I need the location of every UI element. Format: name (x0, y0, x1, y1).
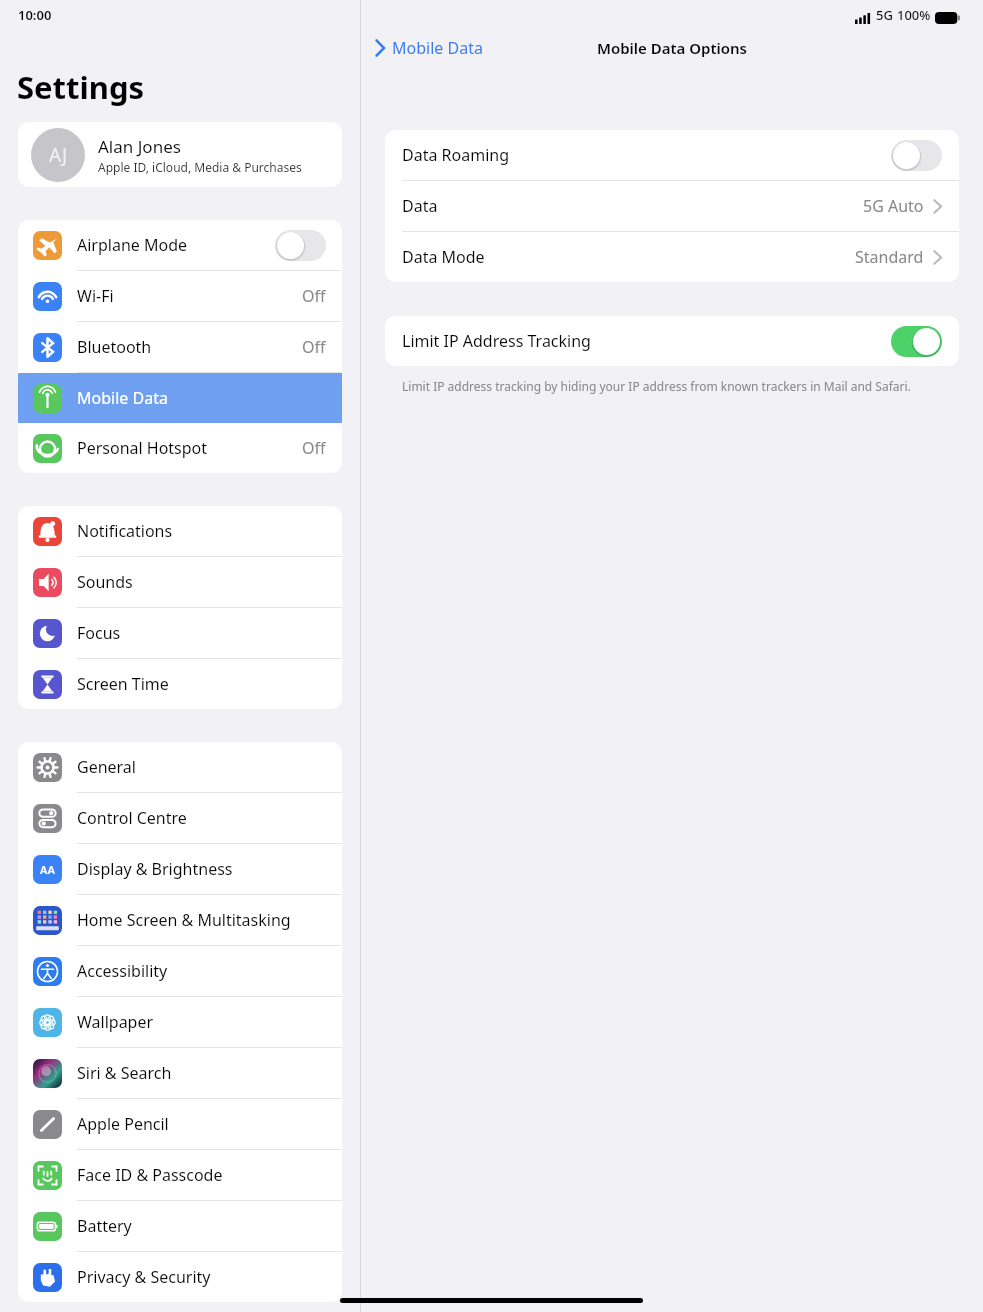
button[interactable]: Apple Pencil (18, 1099, 342, 1149)
button[interactable]: Data Roaming (385, 130, 959, 180)
button[interactable]: Face ID & Passcode (18, 1150, 342, 1200)
staticText: Airplane Mode (77, 234, 275, 256)
button[interactable]: Battery (18, 1201, 342, 1251)
staticText: Limit IP Address Tracking (402, 330, 891, 352)
button[interactable]: Screen Time (18, 659, 342, 709)
staticText: Settings (17, 66, 145, 108)
button[interactable]: Data Roaming toggle (891, 140, 942, 171)
staticText: 5G Auto (863, 195, 924, 217)
staticText: Limit IP address tracking by hiding your… (402, 378, 911, 394)
button[interactable]: General (18, 742, 342, 792)
button[interactable]: Notifications (18, 506, 342, 556)
staticText: 5G (876, 6, 893, 24)
button[interactable]: Data Mode (385, 232, 959, 282)
staticText: Data (402, 195, 863, 217)
staticText: Sounds (77, 571, 326, 593)
staticText: Off (302, 437, 326, 459)
button[interactable]: Sounds (18, 557, 342, 607)
staticText: Wi-Fi (77, 285, 302, 307)
button[interactable]: Limit IP Address Tracking toggle (891, 326, 942, 357)
button[interactable]: Mobile Data (361, 37, 491, 59)
staticText: Face ID & Passcode (77, 1164, 326, 1186)
staticText: Data Mode (402, 246, 855, 268)
staticText: Mobile Data Options (597, 38, 748, 58)
staticText: Wallpaper (77, 1011, 326, 1033)
staticText: Home Screen & Multitasking (77, 909, 326, 931)
button[interactable]: Limit IP Address Tracking (385, 316, 959, 366)
staticText: Accessibility (77, 960, 326, 982)
button[interactable]: Airplane Mode (18, 220, 342, 270)
staticText: Focus (77, 622, 326, 644)
staticText: Mobile Data (392, 37, 483, 59)
button[interactable]: Wallpaper (18, 997, 342, 1047)
staticText: Control Centre (77, 807, 326, 829)
staticText: Off (302, 285, 326, 307)
staticText: Personal Hotspot (77, 437, 302, 459)
staticText: 10:00 (18, 6, 52, 24)
button[interactable]: AA (18, 844, 342, 894)
staticText: Bluetooth (77, 336, 302, 358)
staticText: Apple Pencil (77, 1113, 326, 1135)
button[interactable]: Data (385, 181, 959, 231)
button[interactable]: Control Centre (18, 793, 342, 843)
button[interactable]: Privacy & Security (18, 1252, 342, 1302)
button[interactable]: Siri & Search (18, 1048, 342, 1098)
staticText: Standard (855, 246, 924, 268)
button[interactable]: Wi-Fi (18, 271, 342, 321)
button[interactable]: Bluetooth (18, 322, 342, 372)
button[interactable]: Home Screen & Multitasking (18, 895, 342, 945)
staticText: Apple ID, iCloud, Media & Purchases (98, 159, 302, 175)
staticText: Mobile Data (77, 387, 326, 409)
button[interactable]: AJ (18, 122, 342, 187)
staticText: AJ (49, 142, 68, 168)
button[interactable]: Accessibility (18, 946, 342, 996)
staticText: AA (40, 862, 55, 877)
staticText: Privacy & Security (77, 1266, 326, 1288)
button[interactable]: Mobile Data (18, 373, 342, 423)
staticText: Siri & Search (77, 1062, 326, 1084)
staticText: Battery (77, 1215, 326, 1237)
button[interactable]: Focus (18, 608, 342, 658)
staticText: Notifications (77, 520, 326, 542)
button[interactable]: Airplane Mode toggle (275, 230, 326, 261)
staticText: 100% (897, 6, 931, 24)
button[interactable]: Personal Hotspot (18, 423, 342, 473)
staticText: Alan Jones (98, 135, 181, 158)
staticText: General (77, 756, 326, 778)
staticText: Data Roaming (402, 144, 891, 166)
staticText: Display & Brightness (77, 858, 326, 880)
staticText: Off (302, 336, 326, 358)
staticText: Screen Time (77, 673, 326, 695)
